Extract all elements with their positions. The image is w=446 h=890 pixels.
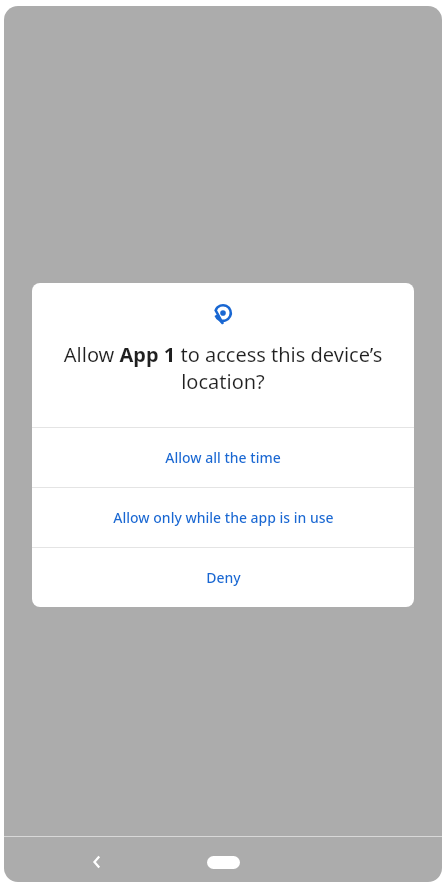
button[interactable]: Allow all the time: [32, 428, 414, 487]
staticText: Allow all the time: [165, 448, 281, 467]
staticText: Allow App 1 to access this device’s loca…: [54, 341, 392, 395]
button[interactable]: Deny: [32, 548, 414, 607]
staticText: Deny: [206, 568, 241, 587]
button[interactable]: Home: [199, 842, 248, 883]
staticText: Allow only while the app is in use: [113, 508, 334, 527]
button[interactable]: Back: [73, 838, 121, 886]
button[interactable]: Allow only while the app is in use: [32, 488, 414, 547]
